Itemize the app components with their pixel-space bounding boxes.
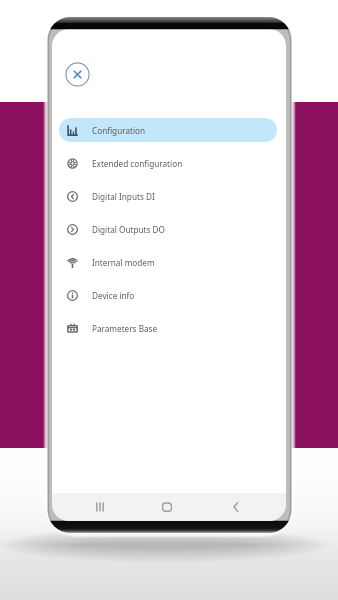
button[interactable]: Extended configuration [59, 151, 277, 175]
staticText: Extended configuration [92, 158, 183, 169]
button[interactable]: Recents [86, 493, 114, 521]
button[interactable]: Parameters Base [59, 316, 277, 340]
button[interactable]: Digital Outputs DO [59, 217, 277, 241]
staticText: Parameters Base [92, 323, 158, 334]
staticText: Digital Inputs DI [92, 191, 155, 202]
button[interactable]: Internal modem [59, 250, 277, 274]
staticText: Configuration [92, 125, 146, 136]
staticText: Device info [92, 290, 135, 301]
button[interactable]: Close [65, 62, 90, 87]
button[interactable]: Device info [59, 283, 277, 307]
button[interactable]: Home [153, 493, 181, 521]
button[interactable]: Configuration [59, 118, 277, 142]
staticText: Digital Outputs DO [92, 224, 165, 235]
staticText: Internal modem [92, 257, 155, 268]
button[interactable]: Back [222, 493, 250, 521]
button[interactable]: Digital Inputs DI [59, 184, 277, 208]
